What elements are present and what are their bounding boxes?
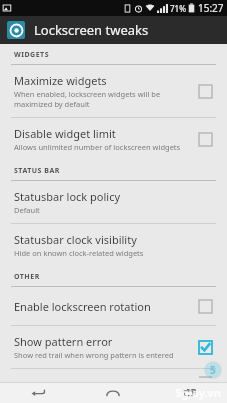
button[interactable]: Back (0, 382, 75, 403)
button[interactable]: Enable menu key (0, 369, 227, 382)
staticText: Lockscreen tweaks (34, 21, 149, 39)
staticText: 15:27 (198, 1, 224, 15)
staticText: WIDGETS (14, 50, 49, 60)
staticText: STATUS BAR (14, 166, 60, 176)
staticText: OTHER (14, 272, 40, 282)
staticText: Hide on known clock-related widgets (14, 248, 144, 258)
button[interactable]: Home (75, 382, 151, 403)
button[interactable]: Statusbar lock policy (0, 181, 227, 223)
staticText: 71% (170, 3, 186, 14)
button[interactable]: Unchecked (194, 128, 216, 150)
staticText: Statusbar clock visibility (14, 232, 137, 247)
staticText: Maximize widgets (14, 73, 107, 88)
button[interactable]: Statusbar clock visibility (0, 224, 227, 266)
button[interactable]: Recent apps (151, 382, 227, 403)
button[interactable]: Enable lockscreen rotation (0, 287, 227, 325)
button[interactable]: Unchecked (194, 295, 216, 317)
button[interactable]: Disable widget limit (0, 118, 227, 160)
button[interactable]: App icon (0, 16, 227, 44)
staticText: Default (14, 205, 40, 215)
staticText: Show red trail when wrong pattern is ent… (14, 350, 174, 360)
staticText: Enable lockscreen rotation (14, 299, 151, 314)
button[interactable]: Checked (194, 336, 216, 358)
other: App icon (7, 21, 25, 39)
staticText: Show pattern error (14, 334, 113, 349)
button[interactable]: Maximize widgets (0, 65, 227, 117)
staticText: Statusbar lock policy (14, 189, 121, 204)
staticText: 5giay.vn (175, 385, 221, 400)
staticText: 5 (210, 363, 216, 377)
staticText: Disable widget limit (14, 126, 116, 141)
staticText: When enabled, lockscreen widgets will be… (14, 89, 161, 109)
staticText: Allows unlimited number of lockscreen wi… (14, 142, 181, 152)
button[interactable]: Unchecked (194, 80, 216, 102)
button[interactable]: Show pattern error (0, 326, 227, 368)
